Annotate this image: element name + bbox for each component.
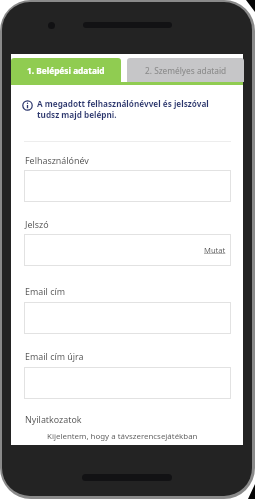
button[interactable] bbox=[24, 302, 231, 334]
staticText: Felhasználónév bbox=[25, 154, 89, 166]
staticText: 1. Belépési adataid bbox=[27, 65, 105, 76]
staticText: Nyilatkozatok bbox=[25, 413, 82, 425]
button[interactable]: Kijelentem, hogy a távszerencsejátékban bbox=[24, 431, 231, 442]
staticText: Jelszó bbox=[25, 218, 49, 230]
button[interactable] bbox=[24, 170, 231, 202]
button[interactable] bbox=[24, 367, 231, 399]
button[interactable]: Mutat bbox=[24, 234, 231, 266]
staticText: 2. Személyes adataid bbox=[145, 65, 227, 76]
staticText: Kijelentem, hogy a távszerencsejátékban bbox=[47, 431, 198, 442]
staticText: Mutat bbox=[204, 245, 226, 255]
button[interactable]: 2. Személyes adataid bbox=[127, 58, 244, 82]
staticText: Email cím újra bbox=[25, 350, 84, 362]
button[interactable]: 1. Belépési adataid bbox=[11, 58, 121, 82]
staticText: A megadott felhasználónévvel és jelszóva… bbox=[37, 98, 230, 121]
staticText: Email cím bbox=[25, 285, 66, 297]
